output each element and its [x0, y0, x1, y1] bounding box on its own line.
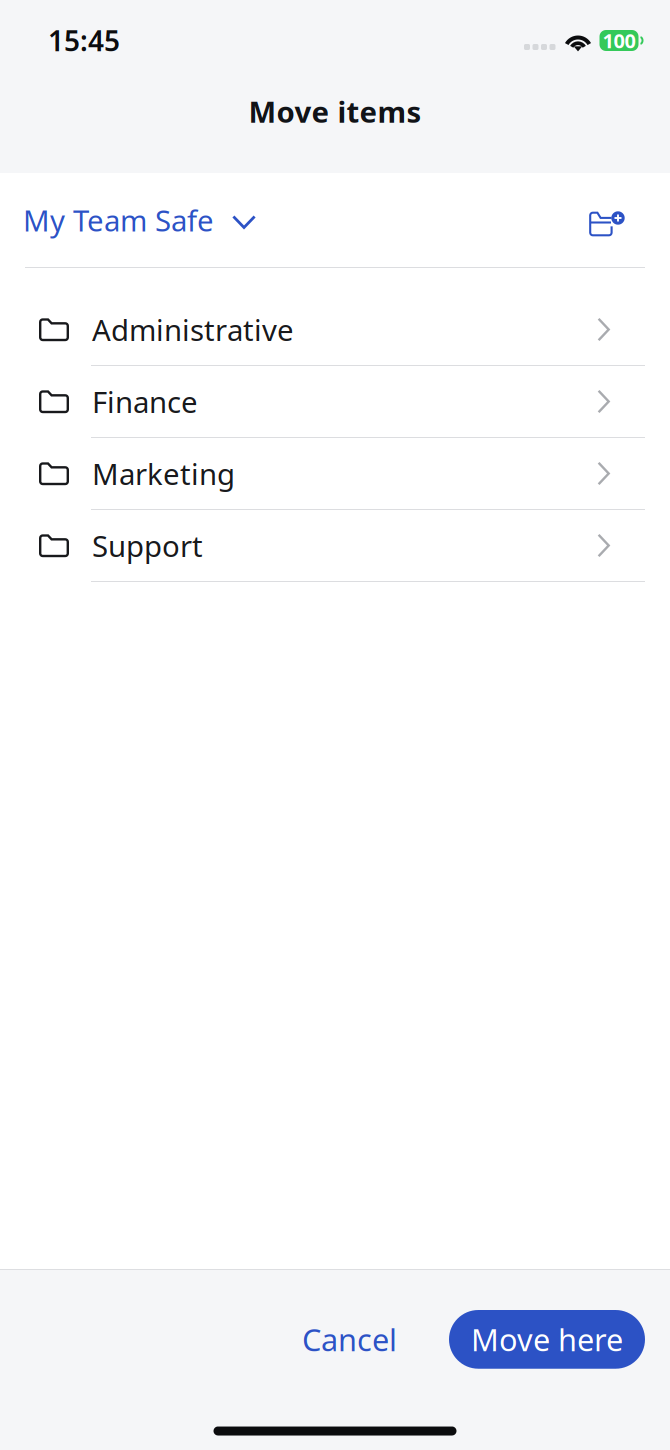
staticText: Finance: [92, 382, 198, 421]
staticText: Administrative: [92, 310, 294, 349]
staticText: Marketing: [92, 454, 235, 493]
staticText: 100: [602, 27, 635, 54]
button[interactable]: Move here: [449, 1310, 645, 1369]
button[interactable]: Administrative: [0, 294, 670, 366]
button[interactable]: Finance: [0, 366, 670, 438]
staticText: Cancel: [302, 1319, 397, 1360]
staticText: 15:45: [48, 22, 120, 59]
staticText: Move here: [471, 1319, 623, 1360]
button[interactable]: New folder: [586, 203, 623, 236]
staticText: Move items: [248, 92, 421, 131]
button[interactable]: My Team Safe: [23, 200, 256, 239]
button[interactable]: Marketing: [0, 438, 670, 510]
button[interactable]: Cancel: [278, 1301, 421, 1378]
staticText: My Team Safe: [23, 200, 214, 239]
staticText: Support: [92, 526, 203, 565]
button[interactable]: Support: [0, 510, 670, 582]
